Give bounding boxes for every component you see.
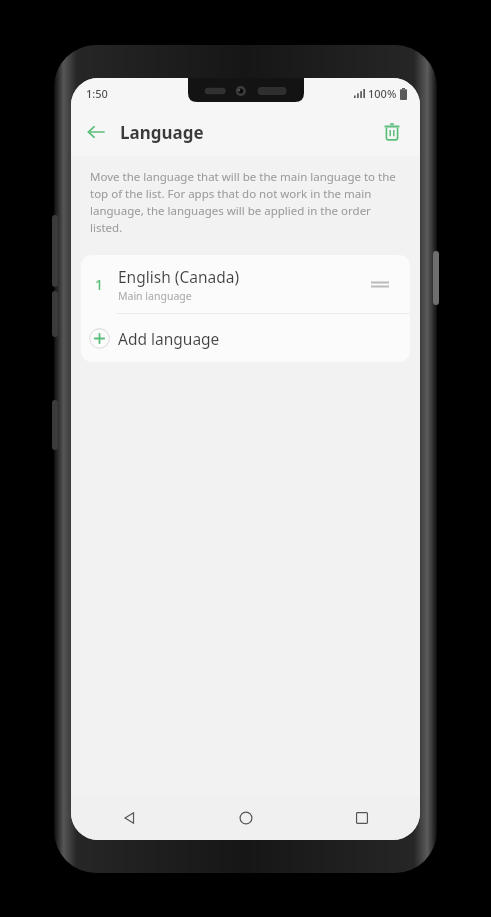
button[interactable]: Delete — [375, 115, 409, 149]
staticText: English (Canada) — [118, 266, 240, 287]
button[interactable]: Back — [71, 796, 188, 840]
button[interactable]: Back — [79, 115, 113, 149]
staticText: 100% — [368, 86, 397, 101]
button[interactable]: Recent apps — [304, 796, 420, 840]
staticText: 1 — [95, 275, 104, 294]
staticText: Move the language that will be the main … — [90, 169, 403, 236]
button[interactable]: 1 — [81, 255, 410, 313]
staticText: Language — [120, 121, 204, 144]
staticText: 1:50 — [86, 86, 108, 101]
staticText: Add language — [118, 328, 220, 349]
button[interactable]: Add language — [81, 314, 410, 362]
button[interactable]: Home — [188, 796, 304, 840]
other: Reorder — [367, 271, 393, 297]
staticText: Main language — [118, 289, 192, 303]
